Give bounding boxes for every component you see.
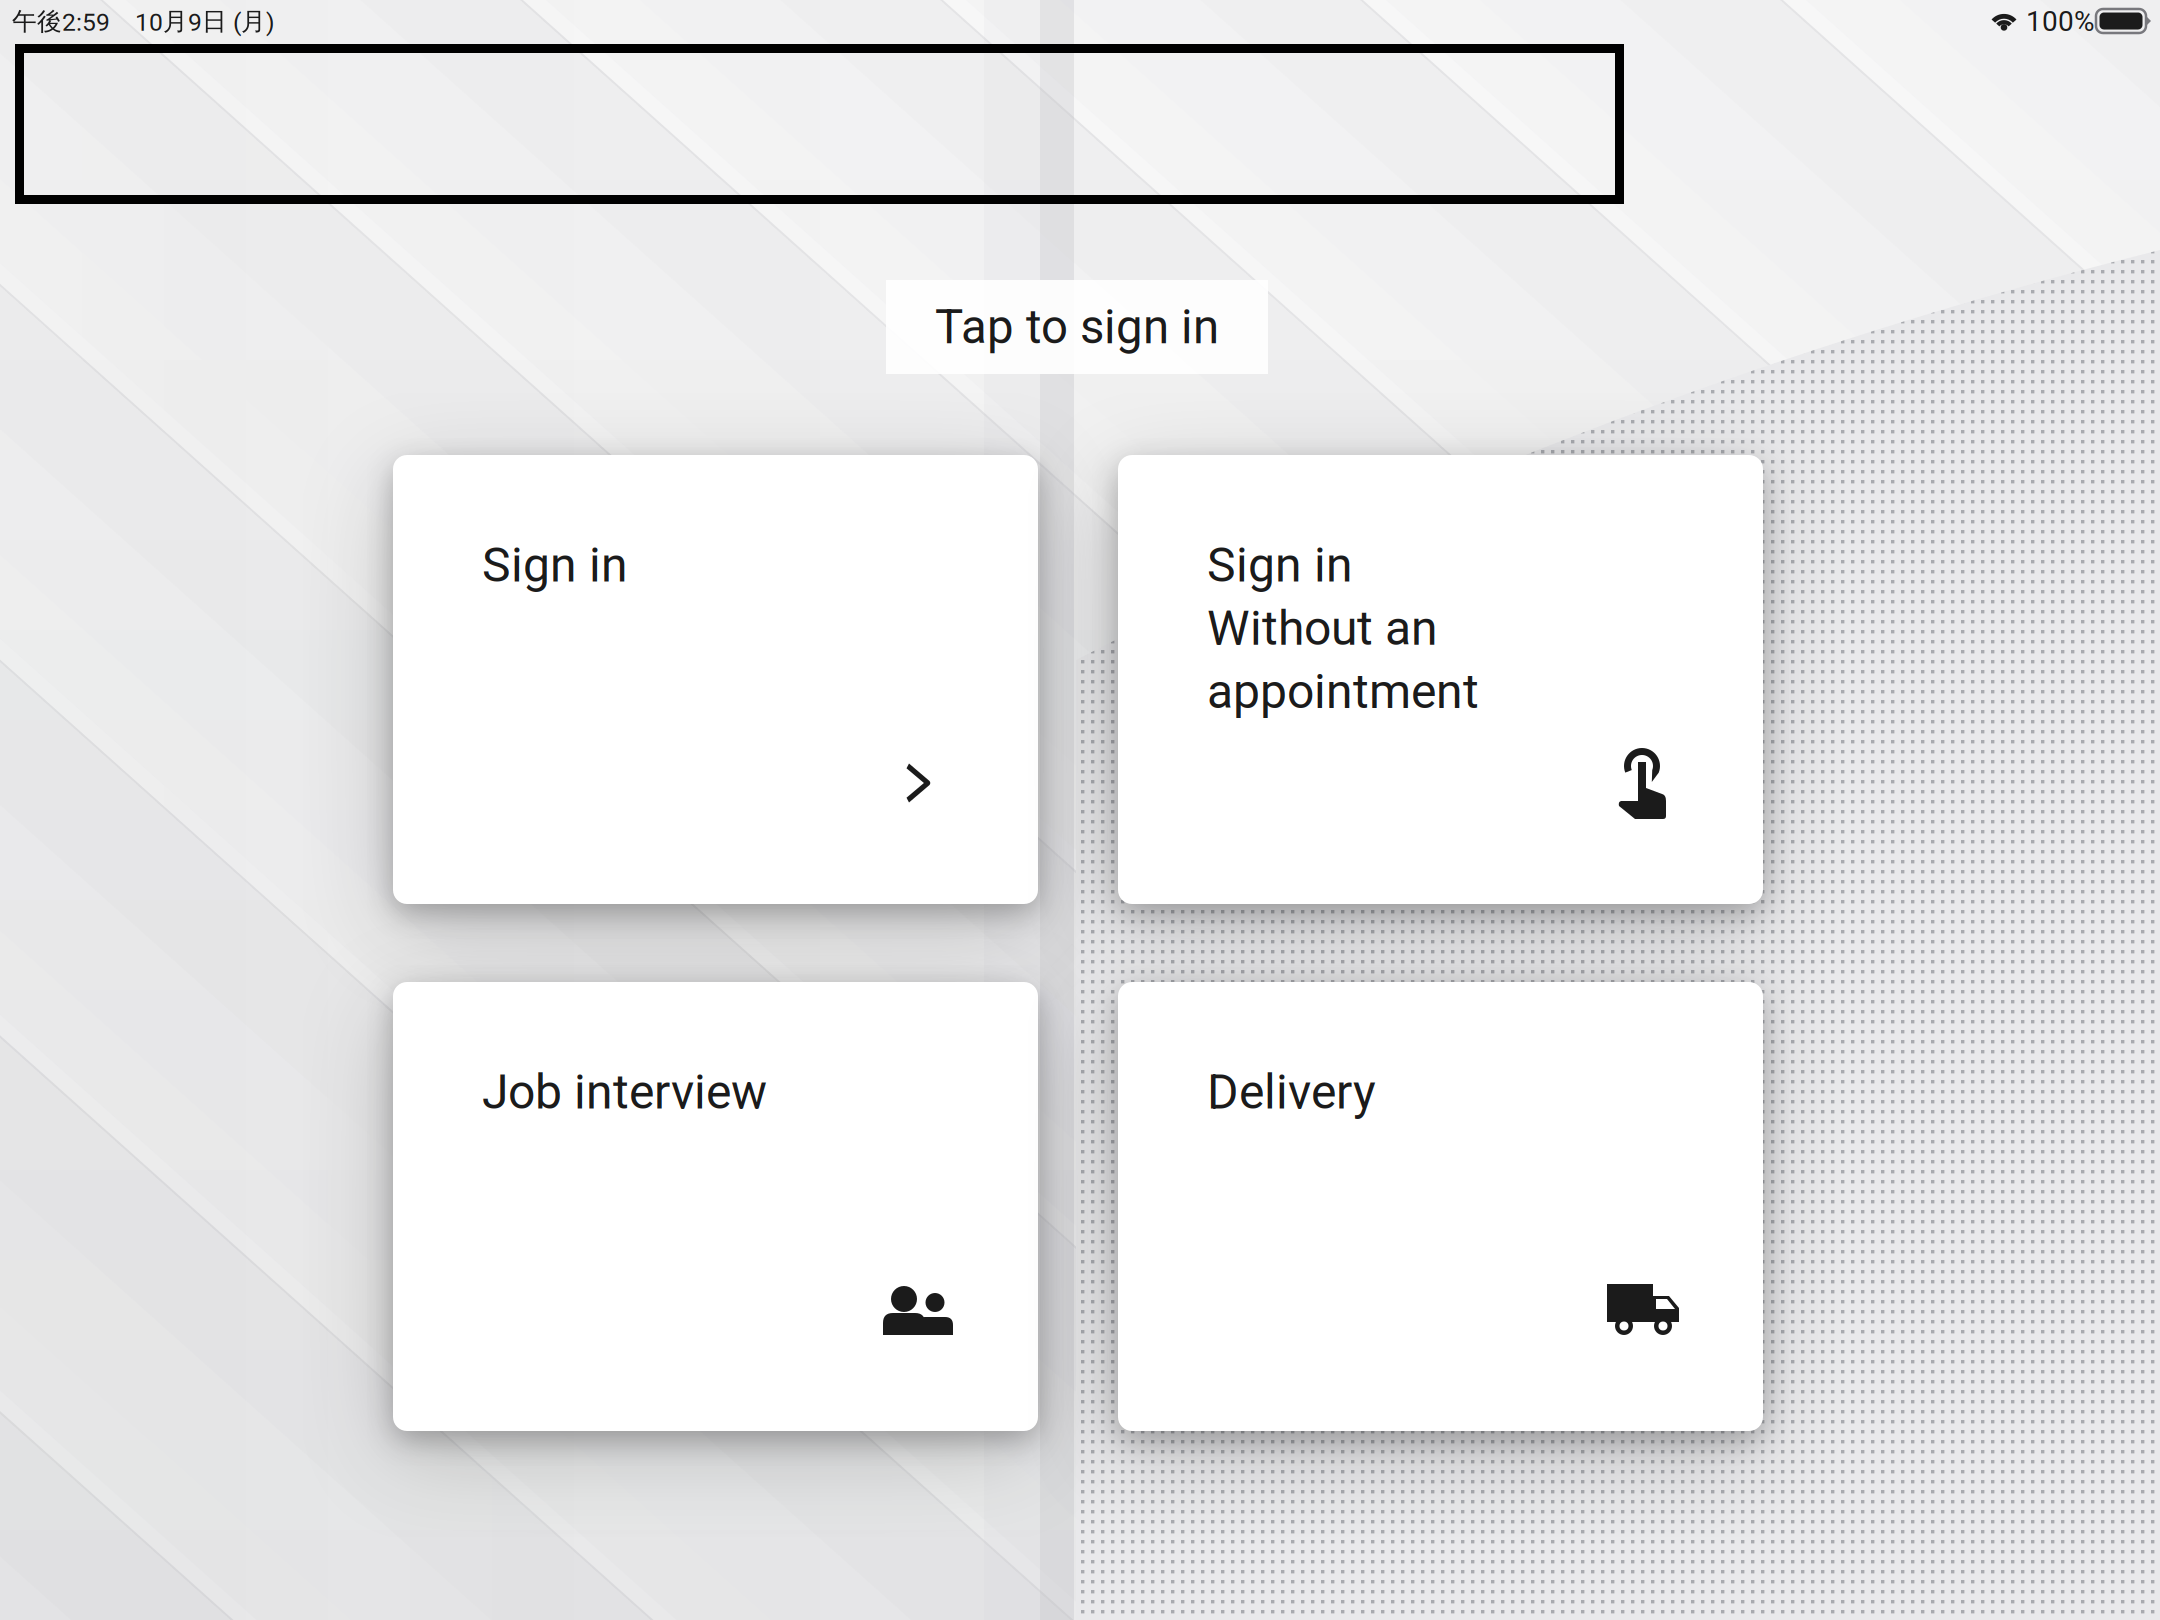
button[interactable]: Sign in — [1118, 455, 1763, 904]
button[interactable]: Sign in — [393, 455, 1038, 904]
staticText: Sign in — [482, 537, 628, 593]
staticText: Job interview — [482, 1064, 767, 1120]
staticText: Without an — [1207, 600, 1438, 656]
staticText: Tap to sign in — [935, 299, 1219, 355]
staticText: Delivery — [1207, 1064, 1376, 1120]
button[interactable]: Job interview — [393, 982, 1038, 1431]
staticText: 午後2:59 10月9日 (月) — [12, 6, 275, 37]
staticText: 100% — [2026, 5, 2095, 38]
button[interactable]: Delivery — [1118, 982, 1763, 1431]
staticText: appointment — [1207, 663, 1479, 720]
staticText: Sign in — [1207, 537, 1353, 593]
